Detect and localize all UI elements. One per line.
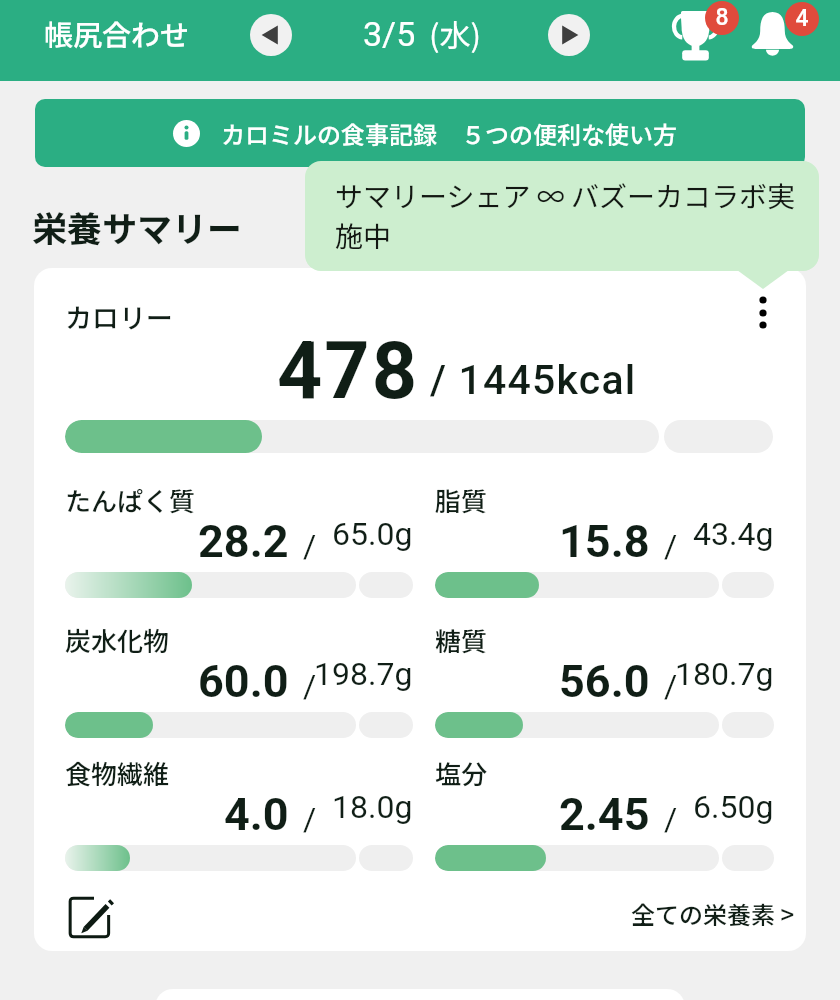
staticText: /	[664, 527, 678, 565]
staticText: 28.2	[198, 515, 289, 568]
button[interactable]: Achievements	[660, 0, 740, 80]
staticText: 炭水化物	[65, 621, 170, 659]
staticText: 栄養サマリー	[32, 201, 243, 252]
staticText: 糖質	[435, 621, 488, 659]
staticText: 4	[793, 5, 811, 32]
button[interactable]: サマリーシェア ∞ バズーカコラボ実施中	[305, 161, 819, 271]
staticText: 198.7g	[314, 655, 413, 693]
staticText: /	[664, 667, 678, 705]
staticText: 食物繊維	[65, 754, 170, 792]
staticText: カロリー	[65, 297, 173, 336]
button[interactable]: Notifications	[740, 0, 820, 80]
button[interactable]: Previous day	[250, 14, 292, 56]
button[interactable]: 全ての栄養素 >	[631, 896, 795, 931]
staticText: サマリーシェア ∞ バズーカコラボ実施中	[335, 175, 813, 255]
staticText: 3/5	[363, 14, 416, 54]
staticText: 2.45	[559, 788, 650, 841]
staticText: /	[664, 800, 678, 838]
staticText: /	[303, 667, 317, 705]
staticText: 56.0	[559, 655, 650, 708]
staticText: 帳尻合わせ	[44, 12, 190, 54]
staticText: /	[303, 527, 317, 565]
button[interactable]: Next day	[548, 14, 590, 56]
button[interactable]: カロミルの食事記録 ５つの便利な使い方	[35, 99, 805, 167]
staticText: 6.50g	[693, 788, 774, 826]
staticText: / 1445kcal	[430, 356, 637, 404]
button[interactable]: More options	[741, 284, 785, 328]
staticText: 18.0g	[332, 788, 413, 826]
staticText: 4.0	[224, 788, 289, 841]
staticText: 60.0	[198, 655, 289, 708]
staticText: 15.8	[559, 515, 650, 568]
staticText: /	[303, 800, 317, 838]
staticText: たんぱく質	[65, 481, 196, 519]
staticText: 478	[277, 325, 419, 418]
staticText: 180.7g	[675, 655, 774, 693]
button[interactable]: Edit	[66, 894, 118, 946]
staticText: 脂質	[435, 481, 488, 519]
staticText: 塩分	[435, 754, 488, 792]
staticText: 全ての栄養素 >	[631, 896, 795, 931]
staticText: 43.4g	[693, 515, 774, 553]
staticText: (水)	[429, 11, 481, 56]
staticText: 65.0g	[332, 515, 413, 553]
staticText: 8	[713, 4, 731, 31]
staticText: カロミルの食事記録 ５つの便利な使い方	[221, 116, 677, 151]
